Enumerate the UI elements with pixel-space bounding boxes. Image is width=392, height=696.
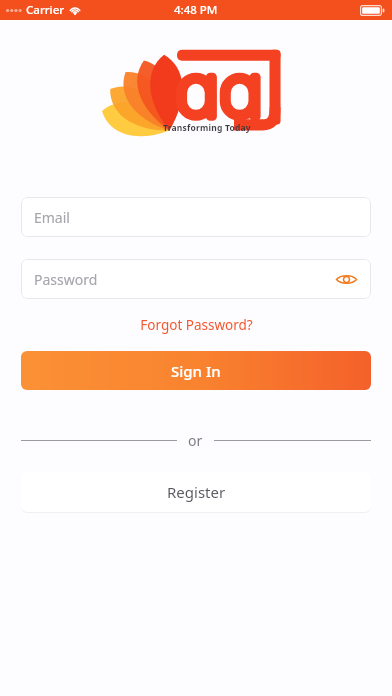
button[interactable]: Register <box>21 472 371 512</box>
button[interactable]: Sign In <box>21 351 371 390</box>
staticText: Password <box>34 270 98 289</box>
staticText: Sign In <box>171 361 221 381</box>
staticText: Carrier <box>26 2 65 18</box>
staticText: 4:48 PM <box>174 2 218 18</box>
staticText: Register <box>167 482 226 502</box>
staticText: Forgot Password? <box>140 316 253 334</box>
button[interactable]: Forgot Password? <box>134 313 259 337</box>
staticText: Transforming Today <box>163 122 251 134</box>
staticText: Email <box>34 208 70 227</box>
staticText: or <box>188 431 203 450</box>
button[interactable]: Show password <box>331 264 361 294</box>
button[interactable]: Email <box>21 197 371 237</box>
button[interactable]: Password <box>21 259 371 299</box>
